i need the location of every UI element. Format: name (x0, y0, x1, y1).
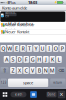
button[interactable]: Y (33, 45, 39, 52)
staticText: ⇧ (2, 67, 6, 74)
staticText: e-Mail dombra (5, 21, 33, 27)
button[interactable]: App (30, 91, 37, 98)
button[interactable]: K (50, 56, 55, 63)
staticText: W (7, 45, 12, 52)
button[interactable]: return (50, 79, 65, 87)
button[interactable]: A (4, 56, 9, 63)
button[interactable]: D (17, 56, 22, 63)
staticText: J (45, 56, 46, 63)
button[interactable]: T (27, 45, 32, 52)
button[interactable]: Konto aumelde (2, 5, 65, 11)
staticText: D (18, 56, 22, 63)
button[interactable]: G (30, 56, 36, 63)
staticText: Q (1, 45, 5, 52)
staticText: R (21, 45, 24, 52)
staticText: X (18, 67, 21, 74)
staticText: M (50, 67, 55, 74)
button[interactable]: J (43, 56, 49, 63)
button[interactable]: U (40, 45, 45, 52)
button[interactable]: H (36, 56, 42, 63)
button[interactable]: S (10, 56, 16, 63)
button[interactable]: Neuer Kontakt (0, 29, 66, 34)
staticText: S (12, 56, 15, 63)
staticText: Neuer Konto, hier Speich... (5, 22, 35, 33)
staticText: 123 (1, 81, 7, 84)
button[interactable]: Start (0, 90, 9, 99)
button[interactable]: X (17, 67, 22, 74)
staticText: H (37, 56, 41, 63)
staticText: E (8, 0, 10, 5)
staticText: C (25, 67, 28, 74)
staticText: E (15, 45, 18, 52)
staticText: 18:03 (28, 0, 37, 5)
button[interactable]: I (46, 45, 52, 52)
button[interactable]: M (49, 67, 55, 74)
button[interactable]: R (20, 45, 26, 52)
button[interactable]: e-Mail dombra (0, 22, 66, 29)
staticText: Done (47, 93, 55, 96)
staticText: Konto aumelde (2, 5, 27, 11)
button[interactable]: Done (46, 92, 56, 97)
staticText: ⚡ (53, 1, 56, 4)
button[interactable]: O (53, 45, 59, 52)
staticText: return (53, 81, 62, 84)
staticText: Neuer Kontakt (5, 29, 29, 34)
button[interactable]: Q (0, 45, 6, 52)
button[interactable]: Close (58, 91, 65, 98)
staticText: Plus (9, 0, 16, 5)
button[interactable]: E (13, 45, 19, 52)
staticText: P (61, 45, 64, 52)
staticText: I (48, 45, 50, 52)
staticText: Y (35, 45, 38, 52)
staticText: T (28, 45, 31, 52)
staticText: L (57, 56, 60, 63)
button[interactable]: B (36, 67, 42, 74)
staticText: F (25, 56, 28, 63)
staticText: × (59, 90, 63, 99)
button[interactable]: Z (10, 67, 16, 74)
staticText: O (54, 45, 58, 52)
staticText: Search (14, 93, 22, 96)
button[interactable]: Search (10, 92, 26, 97)
staticText: G (31, 56, 35, 63)
staticText: V (31, 67, 34, 74)
staticText: A (5, 56, 8, 63)
staticText: B (38, 67, 41, 74)
staticText: space (23, 80, 33, 85)
button[interactable]: ⇧ (0, 67, 9, 74)
button[interactable]: F (23, 56, 29, 63)
button[interactable]: 123 (0, 79, 7, 87)
button[interactable]: C (23, 67, 29, 74)
button[interactable]: V (30, 67, 35, 74)
button[interactable]: ⌫ (57, 67, 65, 74)
button[interactable]: space (8, 79, 48, 87)
staticText: N (44, 67, 48, 74)
staticText: schrieben (5, 11, 16, 18)
staticText: ⌫ (58, 68, 64, 73)
button[interactable]: L (56, 56, 62, 63)
staticText: K (51, 56, 54, 63)
button[interactable]: W (7, 45, 13, 52)
staticText: Z (11, 67, 14, 74)
button[interactable]: P (59, 45, 65, 52)
staticText: U (41, 45, 45, 52)
button[interactable]: N (43, 67, 49, 74)
